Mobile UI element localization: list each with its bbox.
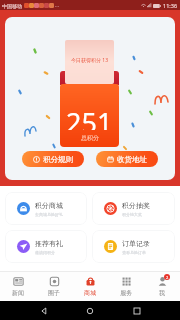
staticText: 查看兑换订单 [122, 250, 146, 255]
staticText: 中国移动 [2, 3, 22, 9]
staticText: 圈子 [48, 289, 60, 297]
staticText: 积分商城 [35, 201, 63, 210]
staticText: 推荐有礼 [35, 239, 63, 248]
staticText: 我 [159, 289, 165, 297]
staticText: 总积分 [81, 134, 99, 142]
button[interactable]: 新闻 [0, 271, 36, 301]
button[interactable]: 推荐有礼 [5, 230, 87, 263]
staticText: 商城 [84, 289, 96, 297]
staticText: 服务 [120, 289, 132, 297]
button[interactable]: 积分规则 [22, 151, 84, 167]
staticText: 积分抽大奖 [122, 212, 142, 217]
staticText: 新闻 [12, 289, 24, 297]
button[interactable]: 商城 [72, 271, 108, 301]
staticText: 去商城兑换好礼 [35, 212, 63, 217]
staticText: 11:36 [163, 2, 178, 9]
staticText: 2 [166, 275, 169, 280]
button[interactable]: 订单记录 [92, 230, 175, 263]
staticText: 邀请得积分 [35, 250, 55, 255]
button[interactable]: 收货地址 [96, 151, 158, 167]
button[interactable]: 服务 [108, 271, 144, 301]
other: Home [87, 308, 93, 314]
other: Recents [134, 308, 140, 314]
button[interactable]: 积分抽奖 [92, 192, 175, 225]
staticText: 251 [66, 104, 113, 130]
other: Back [41, 308, 47, 314]
staticText: 收货地址 [117, 155, 147, 164]
staticText: … [55, 2, 59, 9]
staticText: 积分规则 [43, 155, 73, 164]
staticText: 今日获得积分 13 [71, 57, 109, 64]
button[interactable]: 积分商城 [5, 192, 87, 225]
staticText: 订单记录 [122, 239, 150, 248]
button[interactable]: 圈子 [36, 271, 72, 301]
staticText: 积分抽奖 [122, 201, 150, 210]
button[interactable]: 2 [144, 271, 180, 301]
